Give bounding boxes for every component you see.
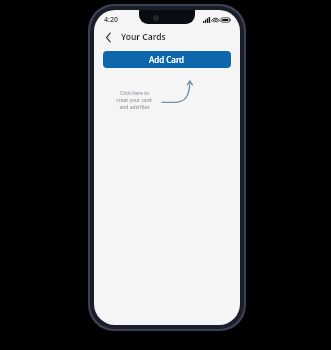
staticText: Add Card bbox=[149, 54, 185, 65]
button[interactable]: Add Card bbox=[103, 51, 231, 68]
button[interactable]: Back bbox=[100, 29, 116, 45]
staticText: creat your card bbox=[116, 97, 152, 104]
staticText: Click here to bbox=[120, 90, 149, 97]
staticText: 4:20 bbox=[104, 15, 118, 25]
staticText: Your Cards bbox=[121, 31, 166, 43]
staticText: and add files bbox=[119, 104, 150, 111]
